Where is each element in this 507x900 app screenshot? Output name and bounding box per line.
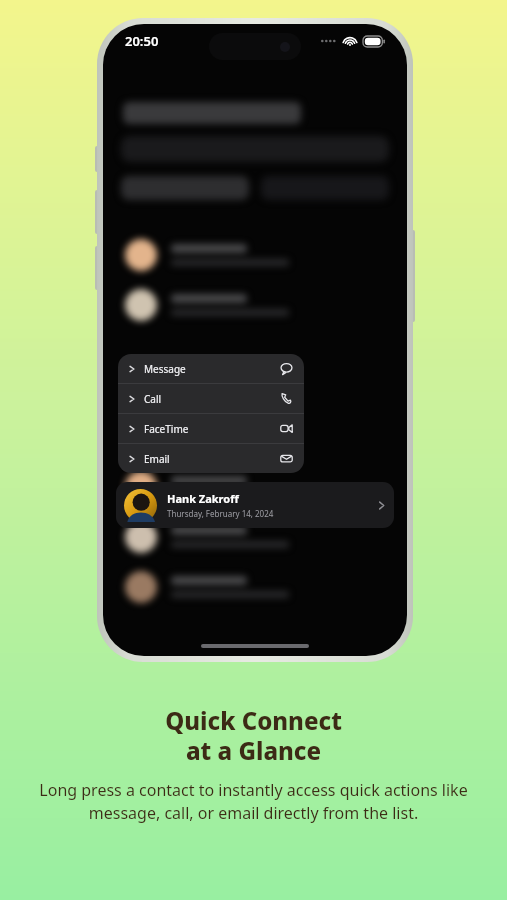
staticText: Long press a contact to instantly access…: [22, 779, 485, 824]
staticText: Hank Zakroff: [167, 491, 239, 506]
button[interactable]: Message: [118, 354, 304, 383]
staticText: 20:50: [125, 32, 159, 50]
staticText: Call: [144, 392, 162, 406]
staticText: Message: [144, 362, 186, 376]
button[interactable]: Email: [118, 444, 304, 473]
button[interactable]: FaceTime: [118, 414, 304, 443]
staticText: Quick Connect at a Glance: [165, 704, 342, 767]
staticText: Thursday, February 14, 2024: [167, 508, 274, 519]
button[interactable]: Hank Zakroff: [116, 482, 394, 528]
staticText: Email: [144, 452, 170, 466]
staticText: FaceTime: [144, 422, 189, 436]
button[interactable]: Call: [118, 384, 304, 413]
